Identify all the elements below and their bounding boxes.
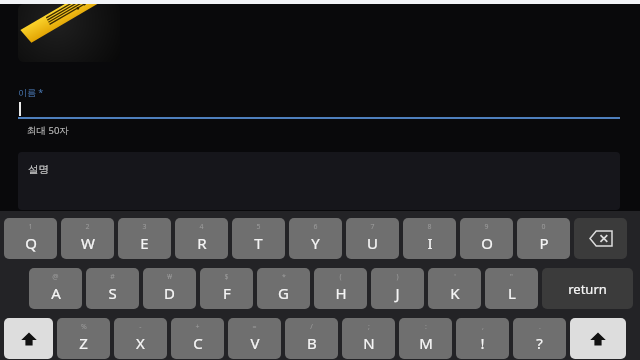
staticText: ;: [368, 322, 370, 332]
staticText: %: [81, 322, 87, 332]
staticText: 1: [28, 222, 33, 232]
button[interactable]: .: [513, 318, 566, 359]
button[interactable]: ,: [456, 318, 509, 359]
staticText: 4: [199, 222, 204, 232]
staticText: 설명: [28, 163, 49, 176]
staticText: J: [395, 283, 400, 303]
button[interactable]: ": [485, 268, 538, 309]
staticText: G: [278, 283, 289, 303]
staticText: I: [427, 233, 433, 253]
button[interactable]: 4: [175, 218, 228, 259]
staticText: B: [307, 333, 317, 353]
staticText: @: [52, 272, 59, 282]
staticText: ': [454, 272, 456, 282]
button[interactable]: 6: [289, 218, 342, 259]
button[interactable]: 1: [4, 218, 57, 259]
staticText: Z: [79, 333, 88, 353]
button[interactable]: =: [228, 318, 281, 359]
staticText: F: [223, 283, 231, 303]
button[interactable]: 5: [232, 218, 285, 259]
staticText: .: [539, 322, 541, 332]
staticText: ": [510, 272, 513, 282]
staticText: =: [252, 322, 257, 332]
staticText: 3: [142, 222, 147, 232]
staticText: N: [363, 333, 375, 353]
staticText: O: [481, 233, 493, 253]
staticText: V: [250, 333, 260, 353]
button[interactable]: Backspace: [574, 218, 627, 259]
staticText: (: [339, 272, 342, 282]
staticText: Q: [25, 233, 37, 253]
button[interactable]: 9: [460, 218, 513, 259]
staticText: 5: [256, 222, 261, 232]
staticText: -: [139, 322, 142, 332]
staticText: $: [224, 272, 229, 282]
staticText: A: [51, 283, 61, 303]
staticText: L: [508, 283, 516, 303]
staticText: 0: [541, 222, 546, 232]
staticText: S: [108, 283, 117, 303]
staticText: #: [110, 272, 115, 282]
staticText: P: [539, 233, 549, 253]
staticText: D: [164, 283, 175, 303]
staticText: C: [193, 333, 203, 353]
button[interactable]: @: [29, 268, 82, 309]
button[interactable]: return: [542, 268, 633, 309]
button[interactable]: %: [57, 318, 110, 359]
staticText: 9: [484, 222, 489, 232]
staticText: +: [195, 322, 200, 332]
staticText: U: [367, 233, 378, 253]
staticText: T: [254, 233, 263, 253]
button[interactable]: 0: [517, 218, 570, 259]
button[interactable]: $: [200, 268, 253, 309]
button[interactable]: ;: [342, 318, 395, 359]
button[interactable]: 설명: [18, 152, 620, 210]
staticText: X: [136, 333, 145, 353]
button[interactable]: 8: [403, 218, 456, 259]
staticText: K: [450, 283, 460, 303]
staticText: 7: [370, 222, 375, 232]
staticText: 8: [427, 222, 432, 232]
staticText: !: [480, 333, 485, 353]
staticText: ): [396, 272, 399, 282]
staticText: H: [335, 283, 347, 303]
staticText: R: [197, 233, 207, 253]
button[interactable]: (: [314, 268, 367, 309]
staticText: 2: [85, 222, 90, 232]
staticText: ₩: [167, 272, 172, 282]
button[interactable]: Shift right: [570, 318, 626, 359]
staticText: :: [425, 322, 427, 332]
button[interactable]: ): [371, 268, 424, 309]
button[interactable]: ₩: [143, 268, 196, 309]
button[interactable]: Shift: [4, 318, 53, 359]
staticText: E: [140, 233, 149, 253]
button[interactable]: :: [399, 318, 452, 359]
button[interactable]: +: [171, 318, 224, 359]
button[interactable]: *: [257, 268, 310, 309]
staticText: ?: [536, 333, 543, 353]
staticText: *: [282, 272, 286, 282]
button[interactable]: Image thumbnail: [18, 4, 120, 62]
button[interactable]: 3: [118, 218, 171, 259]
staticText: /: [310, 322, 313, 332]
staticText: Y: [311, 233, 320, 253]
staticText: M: [419, 333, 433, 353]
button[interactable]: #: [86, 268, 139, 309]
staticText: W: [81, 233, 95, 253]
button[interactable]: -: [114, 318, 167, 359]
staticText: ,: [482, 322, 484, 332]
button[interactable]: /: [285, 318, 338, 359]
staticText: 최대 50자: [27, 124, 69, 137]
button[interactable]: ': [428, 268, 481, 309]
staticText: 6: [313, 222, 318, 232]
button[interactable]: 2: [61, 218, 114, 259]
staticText: return: [568, 280, 607, 298]
button[interactable]: 7: [346, 218, 399, 259]
staticText: 이름 *: [18, 86, 44, 98]
